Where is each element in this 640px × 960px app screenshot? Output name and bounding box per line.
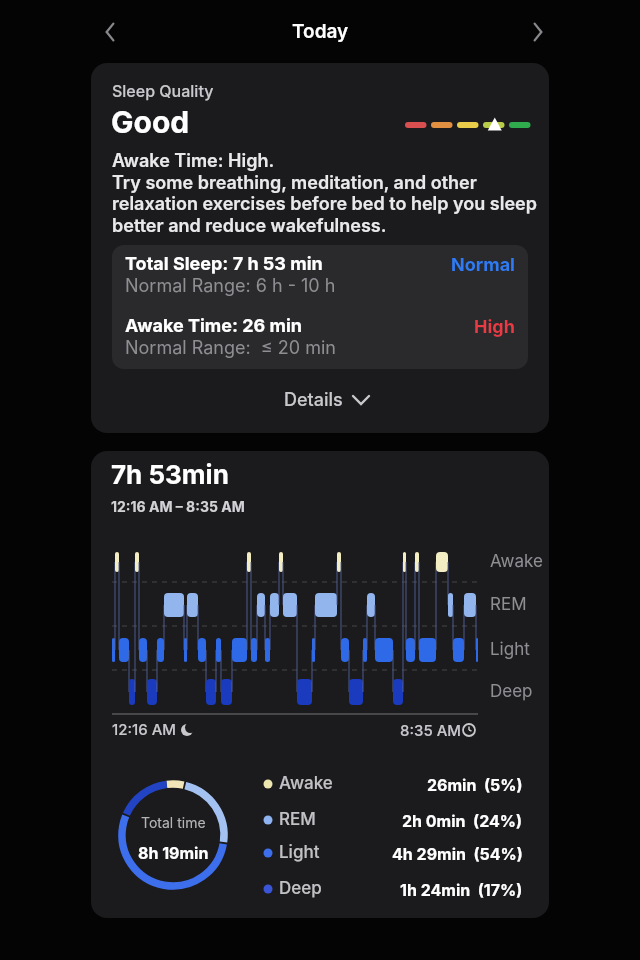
staticText: Good	[111, 104, 190, 140]
staticText: Awake	[490, 551, 543, 572]
staticText: Today	[292, 20, 349, 43]
staticText: REM	[279, 809, 316, 830]
staticText: Normal Range: 6 h - 10 h	[125, 275, 336, 297]
staticText: Total time	[141, 814, 206, 831]
staticText: Deep	[279, 878, 322, 899]
button[interactable]: 7h 53min	[91, 451, 549, 918]
button[interactable]: Sleep Quality	[91, 63, 549, 433]
button[interactable]	[96, 18, 124, 46]
staticText: 2h 0min (24%)	[402, 811, 523, 830]
staticText: 8:35 AM	[400, 721, 461, 739]
button[interactable]	[524, 18, 552, 46]
staticText: Details	[284, 389, 343, 411]
staticText: 12:16 AM – 8:35 AM	[111, 498, 245, 515]
staticText: Awake Time: High.	[112, 150, 275, 172]
staticText: Awake Time: 26 min	[125, 315, 303, 337]
staticText: Light	[279, 842, 320, 863]
staticText: REM	[490, 594, 527, 615]
button[interactable]: Details	[284, 389, 369, 411]
button[interactable]: Total Sleep: 7 h 53 min	[112, 245, 528, 369]
staticText: Total Sleep: 7 h 53 min	[125, 253, 323, 275]
staticText: relaxation exercises before bed to help …	[112, 193, 537, 215]
staticText: Awake	[279, 773, 333, 794]
staticText: Try some breathing, meditation, and othe…	[112, 172, 477, 194]
staticText: Deep	[490, 681, 533, 702]
staticText: High	[474, 316, 515, 338]
staticText: 8h 19min	[138, 843, 209, 862]
staticText: 1h 24min (17%)	[400, 880, 523, 899]
staticText: better and reduce wakefulness.	[112, 215, 387, 237]
staticText: Normal Range: ≤ 20 min	[125, 337, 336, 359]
staticText: 7h 53min	[111, 459, 229, 490]
staticText: Sleep Quality	[112, 81, 214, 100]
staticText: 26min (5%)	[427, 775, 523, 794]
staticText: 4h 29min (54%)	[392, 844, 523, 863]
staticText: Light	[490, 639, 530, 660]
staticText: Normal	[451, 254, 515, 276]
staticText: 12:16 AM	[112, 720, 177, 738]
